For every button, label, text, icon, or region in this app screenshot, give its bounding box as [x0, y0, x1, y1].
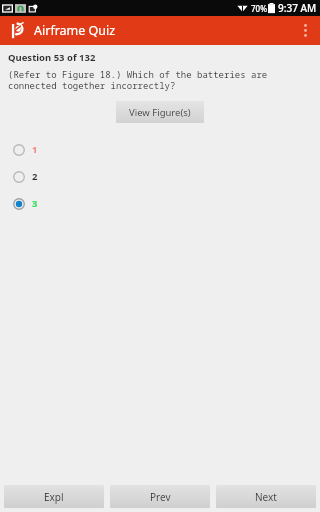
staticText: Question 53 of 132 [8, 51, 96, 64]
staticText: 70% [251, 3, 267, 14]
button[interactable]: 2 [0, 163, 320, 190]
staticText: Expl [44, 490, 64, 504]
staticText: (Refer to Figure 18.) Which of the batte… [8, 68, 312, 92]
button[interactable]: 3 [0, 190, 320, 217]
staticText: 3 [32, 197, 38, 210]
button[interactable]: Expl [4, 485, 104, 508]
button[interactable]: Prev [110, 485, 210, 508]
staticText: Prev [150, 490, 171, 504]
button[interactable]: 1 [0, 136, 320, 163]
staticText: Airframe Quiz [34, 22, 116, 39]
staticText: Next [255, 490, 277, 504]
button[interactable]: More options [290, 16, 320, 45]
staticText: 1 [32, 143, 38, 156]
staticText: 9:37 AM [278, 1, 317, 15]
staticText: View Figure(s) [129, 106, 191, 119]
staticText: 2 [32, 170, 38, 183]
button[interactable]: View Figure(s) [116, 101, 204, 123]
button[interactable]: Next [216, 485, 316, 508]
